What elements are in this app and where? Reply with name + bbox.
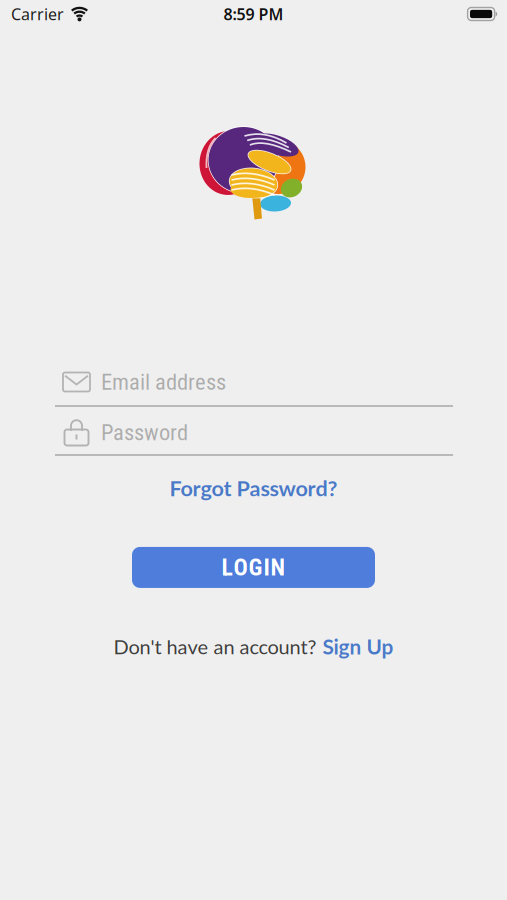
staticText: Password bbox=[101, 419, 188, 446]
staticText: LOGIN bbox=[221, 553, 285, 581]
staticText: Sign Up bbox=[322, 634, 393, 659]
button[interactable]: Password bbox=[55, 419, 453, 456]
button[interactable]: Email address bbox=[55, 369, 453, 407]
button[interactable]: Sign Up bbox=[322, 634, 393, 659]
staticText: Carrier bbox=[11, 3, 64, 25]
button[interactable]: Forgot Password? bbox=[169, 475, 337, 501]
staticText: Don't have an account? bbox=[113, 634, 316, 658]
staticText: Forgot Password? bbox=[169, 475, 337, 501]
staticText: Email address bbox=[101, 369, 226, 395]
button[interactable]: LOGIN bbox=[132, 547, 375, 588]
staticText: 8:59 PM bbox=[223, 3, 283, 25]
